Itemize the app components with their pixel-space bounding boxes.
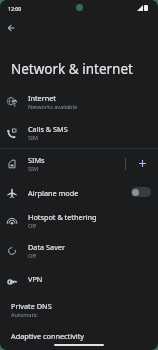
button[interactable]: Airplane mode	[0, 177, 158, 208]
button[interactable]: Data Saver	[0, 235, 158, 266]
staticText: SIMs	[28, 155, 45, 165]
staticText: Networks available	[28, 103, 77, 110]
staticText: 12:00	[8, 5, 22, 12]
button[interactable]: SIMs	[0, 148, 125, 179]
staticText: Calls & SMS	[28, 124, 68, 134]
button[interactable]: Back	[1, 18, 21, 38]
staticText: SIM	[28, 134, 38, 141]
staticText: Airplane mode	[28, 188, 79, 198]
staticText: Off	[28, 252, 37, 259]
staticText: SIM	[28, 165, 38, 172]
button[interactable]: Private DNS	[0, 294, 158, 324]
button[interactable]: Airplane mode toggle	[131, 187, 151, 197]
staticText: Automatic	[11, 311, 38, 318]
button[interactable]: Hotspot & tethering	[0, 205, 158, 236]
button[interactable]: Add SIM	[126, 148, 158, 179]
staticText: Network & internet	[11, 60, 133, 78]
button[interactable]: Calls & SMS	[0, 117, 158, 148]
button[interactable]: Adaptive connectivity	[0, 324, 158, 350]
staticText: Internet	[28, 93, 57, 103]
staticText: VPN	[28, 274, 43, 284]
button[interactable]: VPN	[0, 266, 158, 297]
staticText: Off	[28, 222, 37, 229]
button[interactable]: Internet	[0, 86, 158, 117]
staticText: Hotspot & tethering	[28, 212, 97, 222]
staticText: Data Saver	[28, 242, 65, 252]
staticText: Adaptive connectivity	[11, 331, 84, 341]
staticText: Private DNS	[11, 301, 52, 311]
